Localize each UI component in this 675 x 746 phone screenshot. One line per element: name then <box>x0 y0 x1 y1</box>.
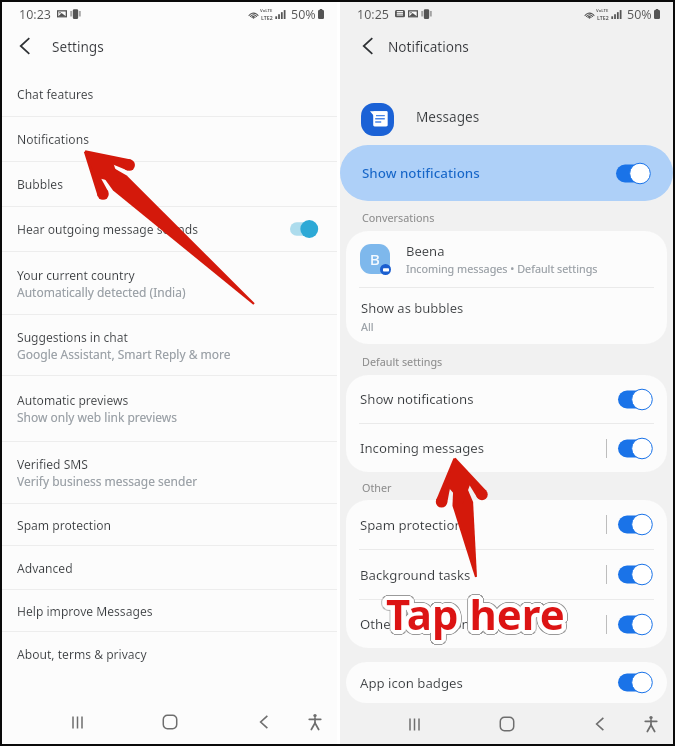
staticText: Hear outgoing message sounds <box>17 221 198 237</box>
button[interactable]: Advanced <box>2 546 337 590</box>
button[interactable]: Suggestions in chat <box>2 315 337 376</box>
staticText: Tap here <box>390 588 569 645</box>
button[interactable]: Recent apps <box>60 705 94 739</box>
staticText: Tap here <box>381 586 560 643</box>
button[interactable]: Back <box>583 707 617 741</box>
button[interactable]: Bubbles <box>2 162 337 207</box>
staticText: Tap here <box>386 585 565 642</box>
staticText: Notifications <box>17 131 89 147</box>
staticText: Tap here <box>381 585 560 642</box>
staticText: Other <box>362 480 392 495</box>
button[interactable]: Accessibility <box>634 707 668 741</box>
staticText: Tap here <box>387 587 566 644</box>
staticText: Tap here <box>382 588 561 645</box>
staticText: Tap here <box>386 588 565 645</box>
button[interactable]: Hear outgoing message sounds <box>2 207 337 252</box>
staticText: Tap here <box>385 581 564 638</box>
button[interactable]: Back <box>247 705 281 739</box>
button[interactable]: Other notifications <box>346 600 667 648</box>
button[interactable]: About, terms & privacy <box>2 632 337 676</box>
button[interactable]: Automatic previews <box>2 376 337 442</box>
staticText: VoLTE <box>260 8 273 14</box>
staticText: Show only web link previews <box>17 409 177 425</box>
staticText: Tap here <box>383 582 562 639</box>
staticText: Tap here <box>384 589 563 646</box>
staticText: Tap here <box>389 586 568 643</box>
staticText: Tap here <box>387 582 566 639</box>
staticText: Tap here <box>387 583 566 640</box>
button[interactable]: Show notifications <box>340 145 673 201</box>
button[interactable]: Incoming messages <box>346 424 667 472</box>
button[interactable]: Home <box>153 705 187 739</box>
staticText: Tap here <box>382 584 561 641</box>
staticText: Tap here <box>389 581 568 638</box>
staticText: Tap here <box>389 588 568 645</box>
staticText: Messages <box>416 107 480 126</box>
staticText: Tap here <box>387 589 566 646</box>
button[interactable]: Navigate up <box>12 33 38 59</box>
staticText: Tap here <box>385 580 564 637</box>
button[interactable]: Recent apps <box>397 707 431 741</box>
staticText: Suggestions in chat <box>17 329 128 345</box>
staticText: Tap here <box>386 585 565 642</box>
button[interactable]: Chat features <box>2 72 337 117</box>
staticText: Tap here <box>383 585 562 642</box>
staticText: Tap here <box>389 583 568 640</box>
button[interactable]: Background tasks <box>346 550 667 599</box>
button[interactable]: B <box>346 231 667 287</box>
button[interactable]: Notifications <box>2 117 337 162</box>
button[interactable]: Spam protection <box>2 504 337 546</box>
staticText: Tap here <box>390 584 569 641</box>
button[interactable]: Home <box>490 707 524 741</box>
staticText: Tap here <box>387 586 566 643</box>
staticText: Tap here <box>390 582 569 639</box>
staticText: Spam protection <box>360 516 606 534</box>
staticText: Bubbles <box>17 176 63 192</box>
staticText: Tap here <box>382 582 561 639</box>
staticText: Tap here <box>387 581 566 638</box>
staticText: Verify business message sender <box>17 473 198 489</box>
button[interactable]: Accessibility <box>298 705 332 739</box>
button[interactable]: Verified SMS <box>2 442 337 504</box>
staticText: Tap here <box>387 581 566 638</box>
button[interactable]: Navigate up <box>355 33 381 59</box>
staticText: Tap here <box>387 588 566 645</box>
staticText: Your current country <box>17 267 135 283</box>
staticText: Tap here <box>385 584 564 641</box>
staticText: Chat features <box>17 86 94 102</box>
staticText: Tap here <box>389 587 568 644</box>
staticText: Tap here <box>383 587 562 644</box>
staticText: Tap here <box>384 585 563 642</box>
button[interactable]: Spam protection <box>346 500 667 549</box>
button[interactable]: App icon badges <box>346 662 667 703</box>
staticText: Tap here <box>390 585 569 642</box>
staticText: 10:23 <box>19 6 51 23</box>
button[interactable]: Help improve Messages <box>2 590 337 632</box>
staticText: Tap here <box>388 582 567 639</box>
staticText: Tap here <box>386 582 565 639</box>
staticText: Spam protection <box>17 517 112 533</box>
staticText: Verified SMS <box>17 456 88 472</box>
staticText: Tap here <box>386 584 565 641</box>
staticText: VoLTE <box>596 8 609 14</box>
staticText: Tap here <box>383 584 562 641</box>
staticText: Show as bubbles <box>361 299 464 317</box>
staticText: Tap here <box>388 588 567 645</box>
staticText: Tap here <box>387 584 566 641</box>
staticText: Tap here <box>390 586 569 643</box>
staticText: 50% <box>627 6 652 23</box>
staticText: Tap here <box>388 589 567 646</box>
button[interactable]: Your current country <box>2 252 337 315</box>
button[interactable]: Show notifications <box>346 375 667 423</box>
staticText: Conversations <box>362 210 435 225</box>
staticText: Tap here <box>388 583 567 640</box>
staticText: Tap here <box>387 580 566 637</box>
staticText: Advanced <box>17 560 73 576</box>
staticText: Tap here <box>386 589 565 646</box>
staticText: Tap here <box>384 584 563 641</box>
button[interactable]: Show as bubbles <box>346 288 667 344</box>
staticText: Tap here <box>388 581 567 638</box>
staticText: 10:25 <box>357 6 389 23</box>
staticText: Notifications <box>388 37 469 56</box>
staticText: Tap here <box>383 588 562 645</box>
